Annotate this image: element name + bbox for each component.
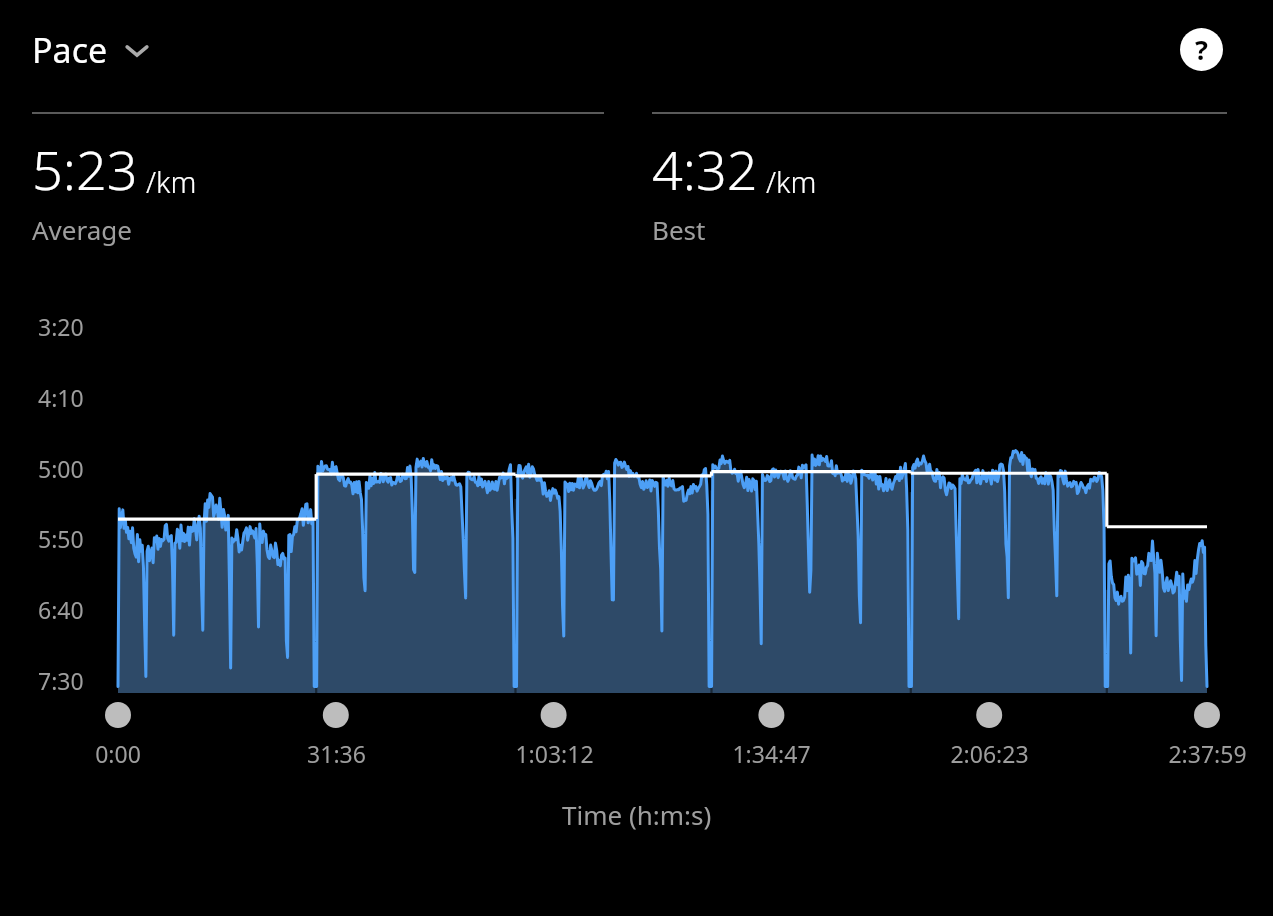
staticText: 7:30: [38, 665, 84, 696]
staticText: Time (h:m:s): [562, 797, 712, 832]
button[interactable]: 5:23: [0, 112, 620, 247]
button[interactable]: Help: [1168, 16, 1234, 82]
staticText: 0:00: [95, 738, 141, 769]
staticText: /km: [766, 162, 817, 201]
staticText: ?: [1195, 31, 1208, 68]
staticText: 4:10: [38, 382, 84, 413]
staticText: Pace: [32, 27, 108, 73]
staticText: 5:23: [32, 132, 138, 206]
staticText: 1:03:12: [515, 738, 594, 769]
staticText: 5:00: [38, 453, 84, 484]
staticText: 4:32: [652, 132, 758, 206]
button[interactable]: 4:32: [620, 112, 1273, 247]
staticText: Best: [652, 212, 706, 247]
button[interactable]: Pace: [24, 23, 158, 77]
staticText: 31:36: [307, 738, 366, 769]
staticText: 5:50: [38, 523, 84, 554]
staticText: 6:40: [38, 594, 84, 625]
staticText: 1:34:47: [732, 738, 811, 769]
staticText: Average: [32, 212, 132, 247]
staticText: 2:06:23: [950, 738, 1029, 769]
staticText: /km: [146, 162, 197, 201]
staticText: 3:20: [38, 311, 84, 342]
staticText: 2:37:59: [1168, 738, 1247, 769]
